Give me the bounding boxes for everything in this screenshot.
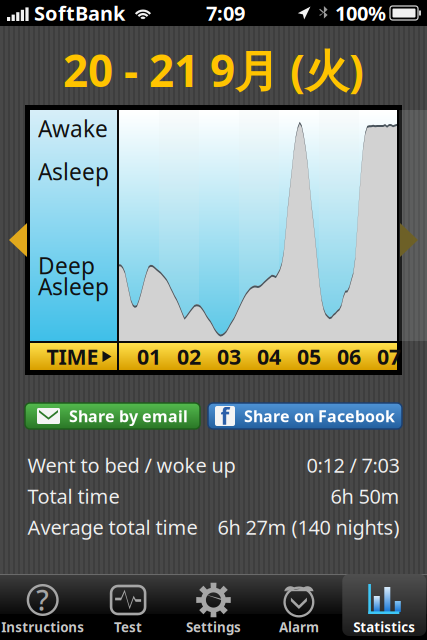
staticText: 07	[377, 342, 401, 371]
staticText: Awake	[38, 113, 108, 143]
button[interactable]: Previous night	[9, 223, 27, 257]
staticText: 7:09	[206, 0, 245, 26]
staticText: 0:12 / 7:03	[306, 452, 399, 478]
staticText: 01	[137, 342, 161, 371]
staticText: 6h 50m	[330, 483, 399, 509]
staticText: Statistics	[353, 618, 415, 636]
staticText: 04	[257, 342, 281, 371]
button[interactable]: Alarm	[256, 574, 342, 640]
staticText: Asleep	[38, 271, 109, 301]
button[interactable]: Statistics	[342, 574, 427, 640]
staticText: 03	[217, 342, 241, 371]
staticText: Total time	[27, 483, 119, 509]
staticText: Deep	[38, 250, 95, 280]
staticText: Instructions	[1, 618, 84, 636]
staticText: Asleep	[38, 156, 109, 186]
staticText: ?	[36, 581, 49, 619]
staticText: 06	[337, 342, 361, 371]
button[interactable]: Share by email	[25, 403, 200, 429]
staticText: f	[220, 401, 229, 431]
staticText: Settings	[186, 618, 241, 636]
staticText: Alarm	[279, 618, 319, 636]
staticText: SoftBank	[34, 0, 125, 26]
button[interactable]: Test	[85, 574, 171, 640]
staticText: Went to bed / woke up	[27, 452, 235, 478]
button[interactable]: ?	[0, 574, 85, 640]
staticText: Average total time	[27, 514, 197, 540]
button[interactable]: f	[208, 403, 402, 429]
staticText: 02	[177, 342, 201, 371]
staticText: 20 - 21 9月 (火)	[63, 41, 364, 99]
staticText: TIME	[46, 342, 98, 371]
staticText: 100%	[335, 0, 386, 26]
button[interactable]: Settings	[171, 574, 256, 640]
button[interactable]: Next night	[400, 223, 418, 257]
staticText: Share by email	[69, 405, 188, 427]
staticText: 6h 27m (140 nights)	[217, 514, 399, 540]
staticText: 05	[297, 342, 321, 371]
staticText: Share on Facebook	[244, 405, 395, 427]
staticText: Test	[114, 618, 142, 636]
